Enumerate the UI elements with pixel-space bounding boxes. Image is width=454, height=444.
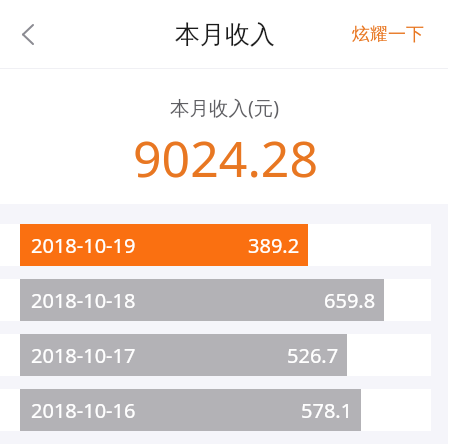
staticText: 本月收入(元) [170,94,280,121]
staticText: 2018-10-19 [31,232,136,259]
button[interactable]: Back [3,10,51,58]
button[interactable]: 2018-10-17 [0,334,454,376]
staticText: 578.1 [301,397,353,424]
button[interactable]: 2018-10-19 [0,224,454,266]
staticText: 9024.28 [133,124,318,192]
button[interactable]: 2018-10-18 [0,279,454,321]
staticText: 本月收入 [175,19,275,50]
staticText: 389.2 [248,232,300,259]
staticText: 炫耀一下 [352,23,424,46]
staticText: 2018-10-16 [31,397,136,424]
button[interactable]: 炫耀一下 [344,17,432,52]
staticText: 659.8 [324,287,376,314]
staticText: 2018-10-17 [31,342,136,369]
staticText: 526.7 [287,342,339,369]
button[interactable]: 2018-10-16 [0,389,454,431]
staticText: 2018-10-18 [31,287,136,314]
